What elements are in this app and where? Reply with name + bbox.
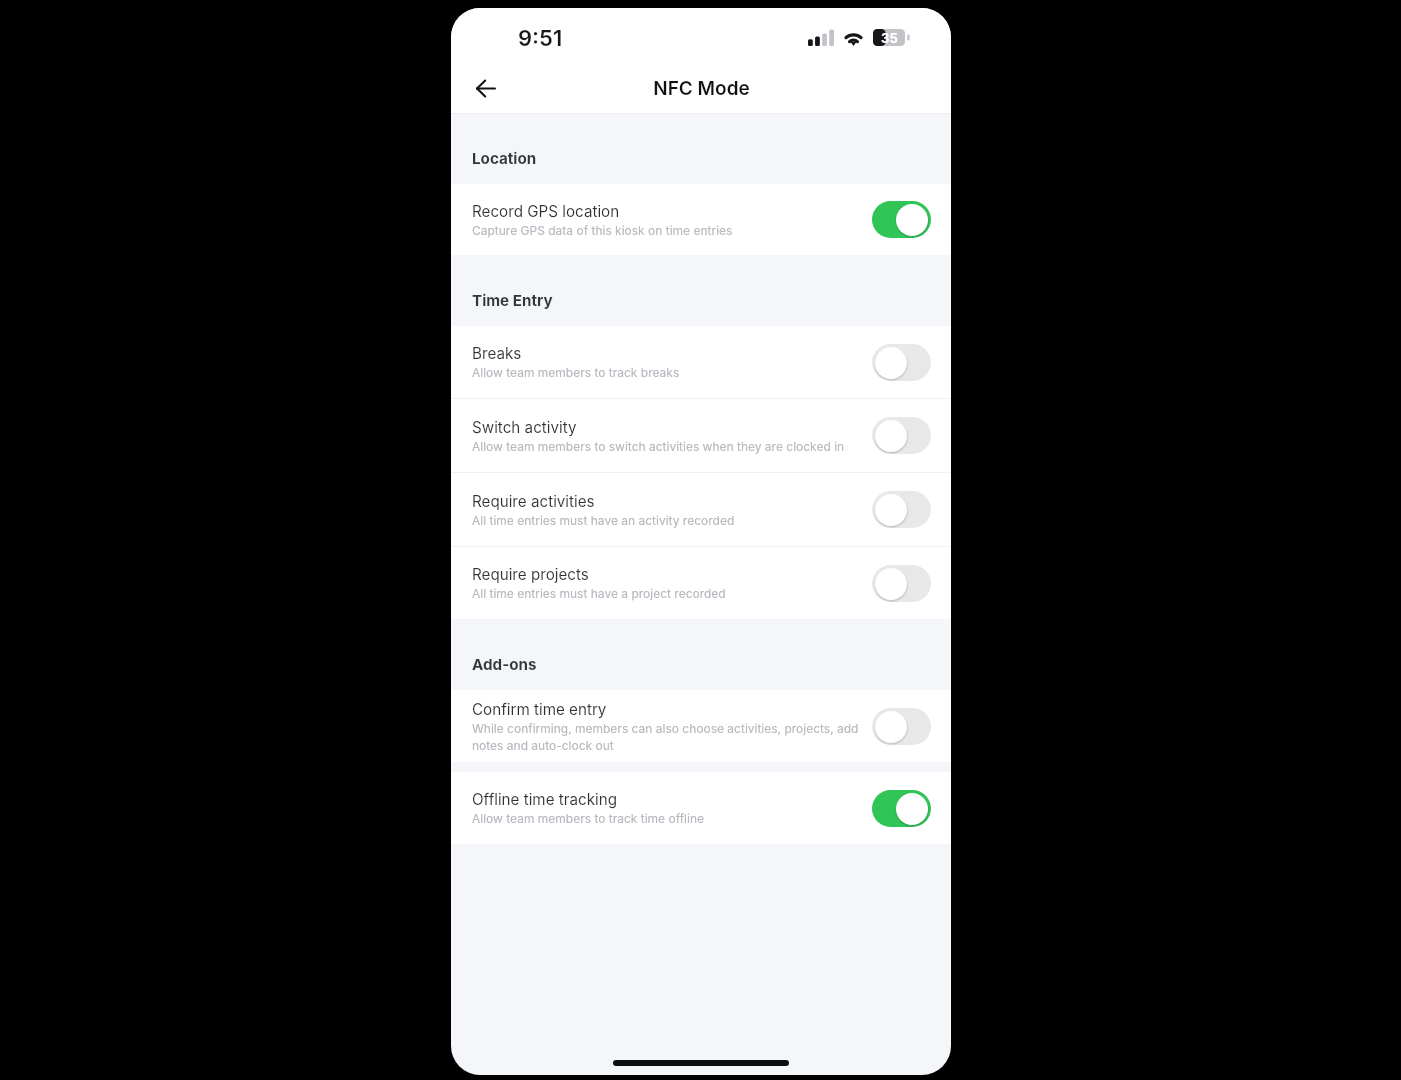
staticText: NFC Mode: [653, 77, 750, 100]
button[interactable]: Switch activity: [451, 399, 951, 472]
staticText: 9:51: [518, 25, 563, 52]
button[interactable]: Back: [464, 66, 508, 110]
staticText: All time entries must have a project rec…: [472, 586, 726, 601]
button[interactable]: On: [872, 201, 931, 238]
staticText: Time Entry: [472, 291, 553, 309]
staticText: While confirming, members can also choos…: [472, 721, 862, 753]
staticText: Breaks: [472, 344, 522, 362]
staticText: Switch activity: [472, 418, 577, 436]
staticText: Capture GPS data of this kiosk on time e…: [472, 223, 733, 238]
button[interactable]: Record GPS location: [451, 184, 951, 255]
staticText: 35: [881, 30, 898, 46]
button[interactable]: Confirm time entry: [451, 690, 951, 762]
staticText: Require projects: [472, 565, 589, 583]
staticText: Confirm time entry: [472, 700, 607, 718]
button[interactable]: Off: [872, 491, 931, 528]
button[interactable]: Require activities: [451, 473, 951, 546]
button[interactable]: Off: [872, 565, 931, 602]
staticText: Allow team members to track time offline: [472, 811, 705, 826]
staticText: Require activities: [472, 492, 595, 510]
staticText: Offline time tracking: [472, 790, 617, 808]
staticText: Allow team members to switch activities …: [472, 439, 845, 454]
button[interactable]: On: [872, 790, 931, 827]
staticText: Record GPS location: [472, 202, 620, 220]
button[interactable]: Offline time tracking: [451, 772, 951, 844]
button[interactable]: Off: [872, 417, 931, 454]
staticText: Location: [472, 149, 537, 167]
button[interactable]: Require projects: [451, 547, 951, 619]
staticText: All time entries must have an activity r…: [472, 513, 735, 528]
staticText: Allow team members to track breaks: [472, 365, 680, 380]
button[interactable]: Off: [872, 344, 931, 381]
staticText: Add-ons: [472, 655, 537, 673]
button[interactable]: Breaks: [451, 326, 951, 398]
button[interactable]: Off: [872, 708, 931, 745]
